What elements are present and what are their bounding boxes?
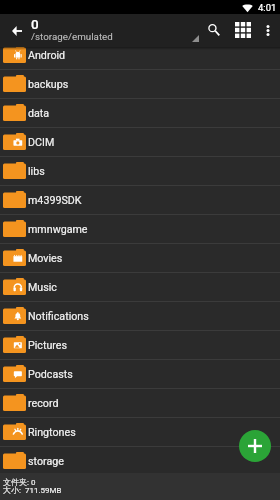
staticText: 文件夹: 0	[3, 477, 36, 487]
button[interactable]: Back	[5, 19, 29, 43]
staticText: 0	[31, 16, 39, 32]
staticText: backups	[28, 78, 69, 91]
staticText: Podcasts	[28, 368, 73, 381]
staticText: Notifications	[28, 310, 89, 323]
staticText: Ringtones	[28, 426, 76, 439]
staticText: Pictures	[28, 339, 68, 352]
button[interactable]: Pictures	[0, 331, 280, 359]
button[interactable]: Android	[0, 41, 280, 69]
button[interactable]: Music	[0, 273, 280, 301]
button[interactable]: Notifications	[0, 302, 280, 330]
staticText: 4:01	[258, 2, 277, 13]
staticText: DCIM	[28, 136, 55, 149]
button[interactable]: Movies	[0, 244, 280, 272]
staticText: storage	[28, 455, 64, 468]
button[interactable]: Ringtones	[0, 418, 280, 446]
button[interactable]: Podcasts	[0, 360, 280, 388]
staticText: Music	[28, 281, 57, 294]
staticText: Android	[28, 49, 66, 62]
button[interactable]: mmnwgame	[0, 215, 280, 243]
staticText: /storage/emulated	[31, 31, 113, 42]
staticText: libs	[28, 165, 45, 178]
staticText: record	[28, 397, 59, 410]
button[interactable]: libs	[0, 157, 280, 185]
button[interactable]: Search	[201, 17, 226, 42]
staticText: mmnwgame	[28, 223, 88, 236]
button[interactable]: DCIM	[0, 128, 280, 156]
button[interactable]: data	[0, 99, 280, 127]
button[interactable]: backups	[0, 70, 280, 98]
button[interactable]: More options	[257, 20, 278, 41]
staticText: m4399SDK	[28, 194, 82, 207]
button[interactable]: record	[0, 389, 280, 417]
staticText: 大小: 711.59MB	[3, 485, 62, 495]
button[interactable]: m4399SDK	[0, 186, 280, 214]
staticText: data	[28, 107, 50, 120]
button[interactable]: Add	[239, 430, 271, 462]
staticText: Movies	[28, 252, 63, 265]
button[interactable]: Grid view	[230, 17, 255, 42]
button[interactable]: storage	[0, 447, 280, 475]
